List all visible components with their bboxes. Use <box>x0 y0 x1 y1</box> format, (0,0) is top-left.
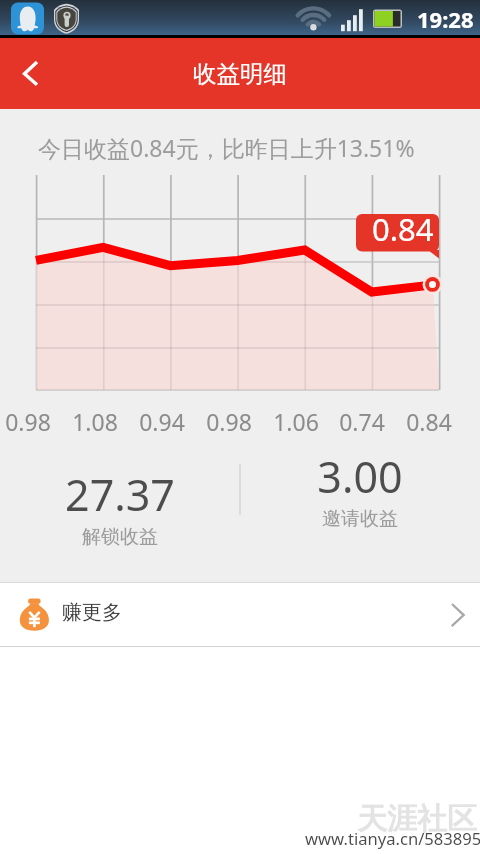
staticText: 今日收益0.84元，比昨日上升13.51% <box>38 132 415 163</box>
staticText: 0.94 <box>122 406 202 437</box>
staticText: 0.98 <box>189 406 269 437</box>
staticText: 0.84 <box>372 208 434 250</box>
staticText: 27.37 <box>0 465 240 524</box>
button[interactable]: Back <box>0 38 62 109</box>
staticText: 1.08 <box>55 406 135 437</box>
staticText: 19:28 <box>417 4 474 34</box>
staticText: 解锁收益 <box>0 525 240 549</box>
button[interactable]: 赚更多 <box>0 583 480 646</box>
staticText: 0.74 <box>322 406 402 437</box>
staticText: 邀请收益 <box>240 507 480 531</box>
staticText: 赚更多 <box>62 600 122 625</box>
staticText: 收益明细 <box>193 59 287 89</box>
staticText: 0.98 <box>0 406 68 437</box>
staticText: 3.00 <box>240 447 480 506</box>
staticText: 天涯社区 <box>357 800 477 838</box>
staticText: 1.06 <box>256 406 336 437</box>
staticText: www.tianya.cn/58389547 <box>305 827 480 850</box>
staticText: 0.84 <box>389 406 469 437</box>
